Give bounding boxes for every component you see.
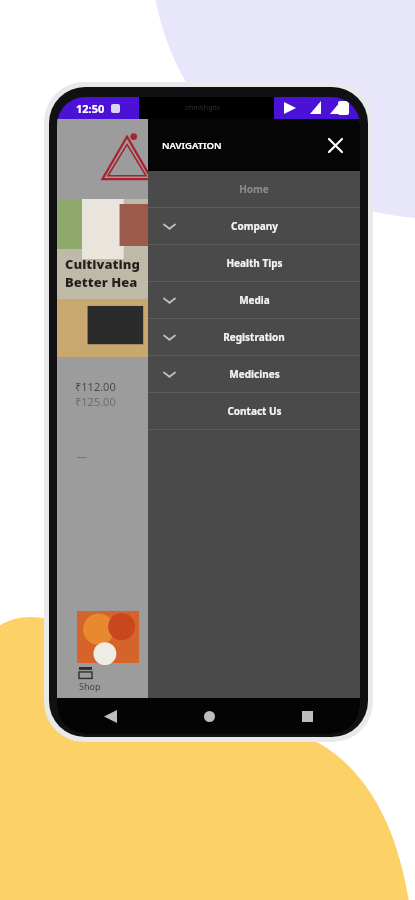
staticText: Better Hea [65, 273, 138, 291]
staticText: Contact Us [227, 404, 282, 418]
button[interactable]: Close navigation [318, 128, 352, 162]
staticText: ohmkhgds [185, 103, 221, 113]
staticText: Home [239, 182, 269, 196]
staticText: Media [239, 293, 270, 307]
staticText: Company [231, 219, 278, 233]
button[interactable]: Company [148, 208, 360, 244]
staticText: Cultivating [65, 255, 140, 273]
staticText: ₹125.00 [75, 394, 116, 409]
staticText: — [77, 449, 87, 463]
button[interactable]: Medicines [148, 356, 360, 392]
staticText: Registration [223, 330, 285, 344]
button[interactable]: Media [148, 282, 360, 318]
staticText: Health Tips [226, 256, 283, 270]
staticText: Medicines [229, 367, 280, 381]
staticText: 12:50 [76, 101, 105, 116]
button[interactable]: Recent apps [290, 699, 324, 733]
staticText: Shop [79, 680, 101, 692]
button[interactable]: Home [148, 171, 360, 207]
button[interactable]: Home [192, 699, 226, 733]
staticText: NAVIGATION [162, 139, 222, 152]
button[interactable]: Back [93, 699, 127, 733]
button[interactable]: Contact Us [148, 393, 360, 429]
button[interactable]: Registration [148, 319, 360, 355]
button[interactable]: Health Tips [148, 245, 360, 281]
staticText: ₹112.00 [75, 379, 116, 394]
